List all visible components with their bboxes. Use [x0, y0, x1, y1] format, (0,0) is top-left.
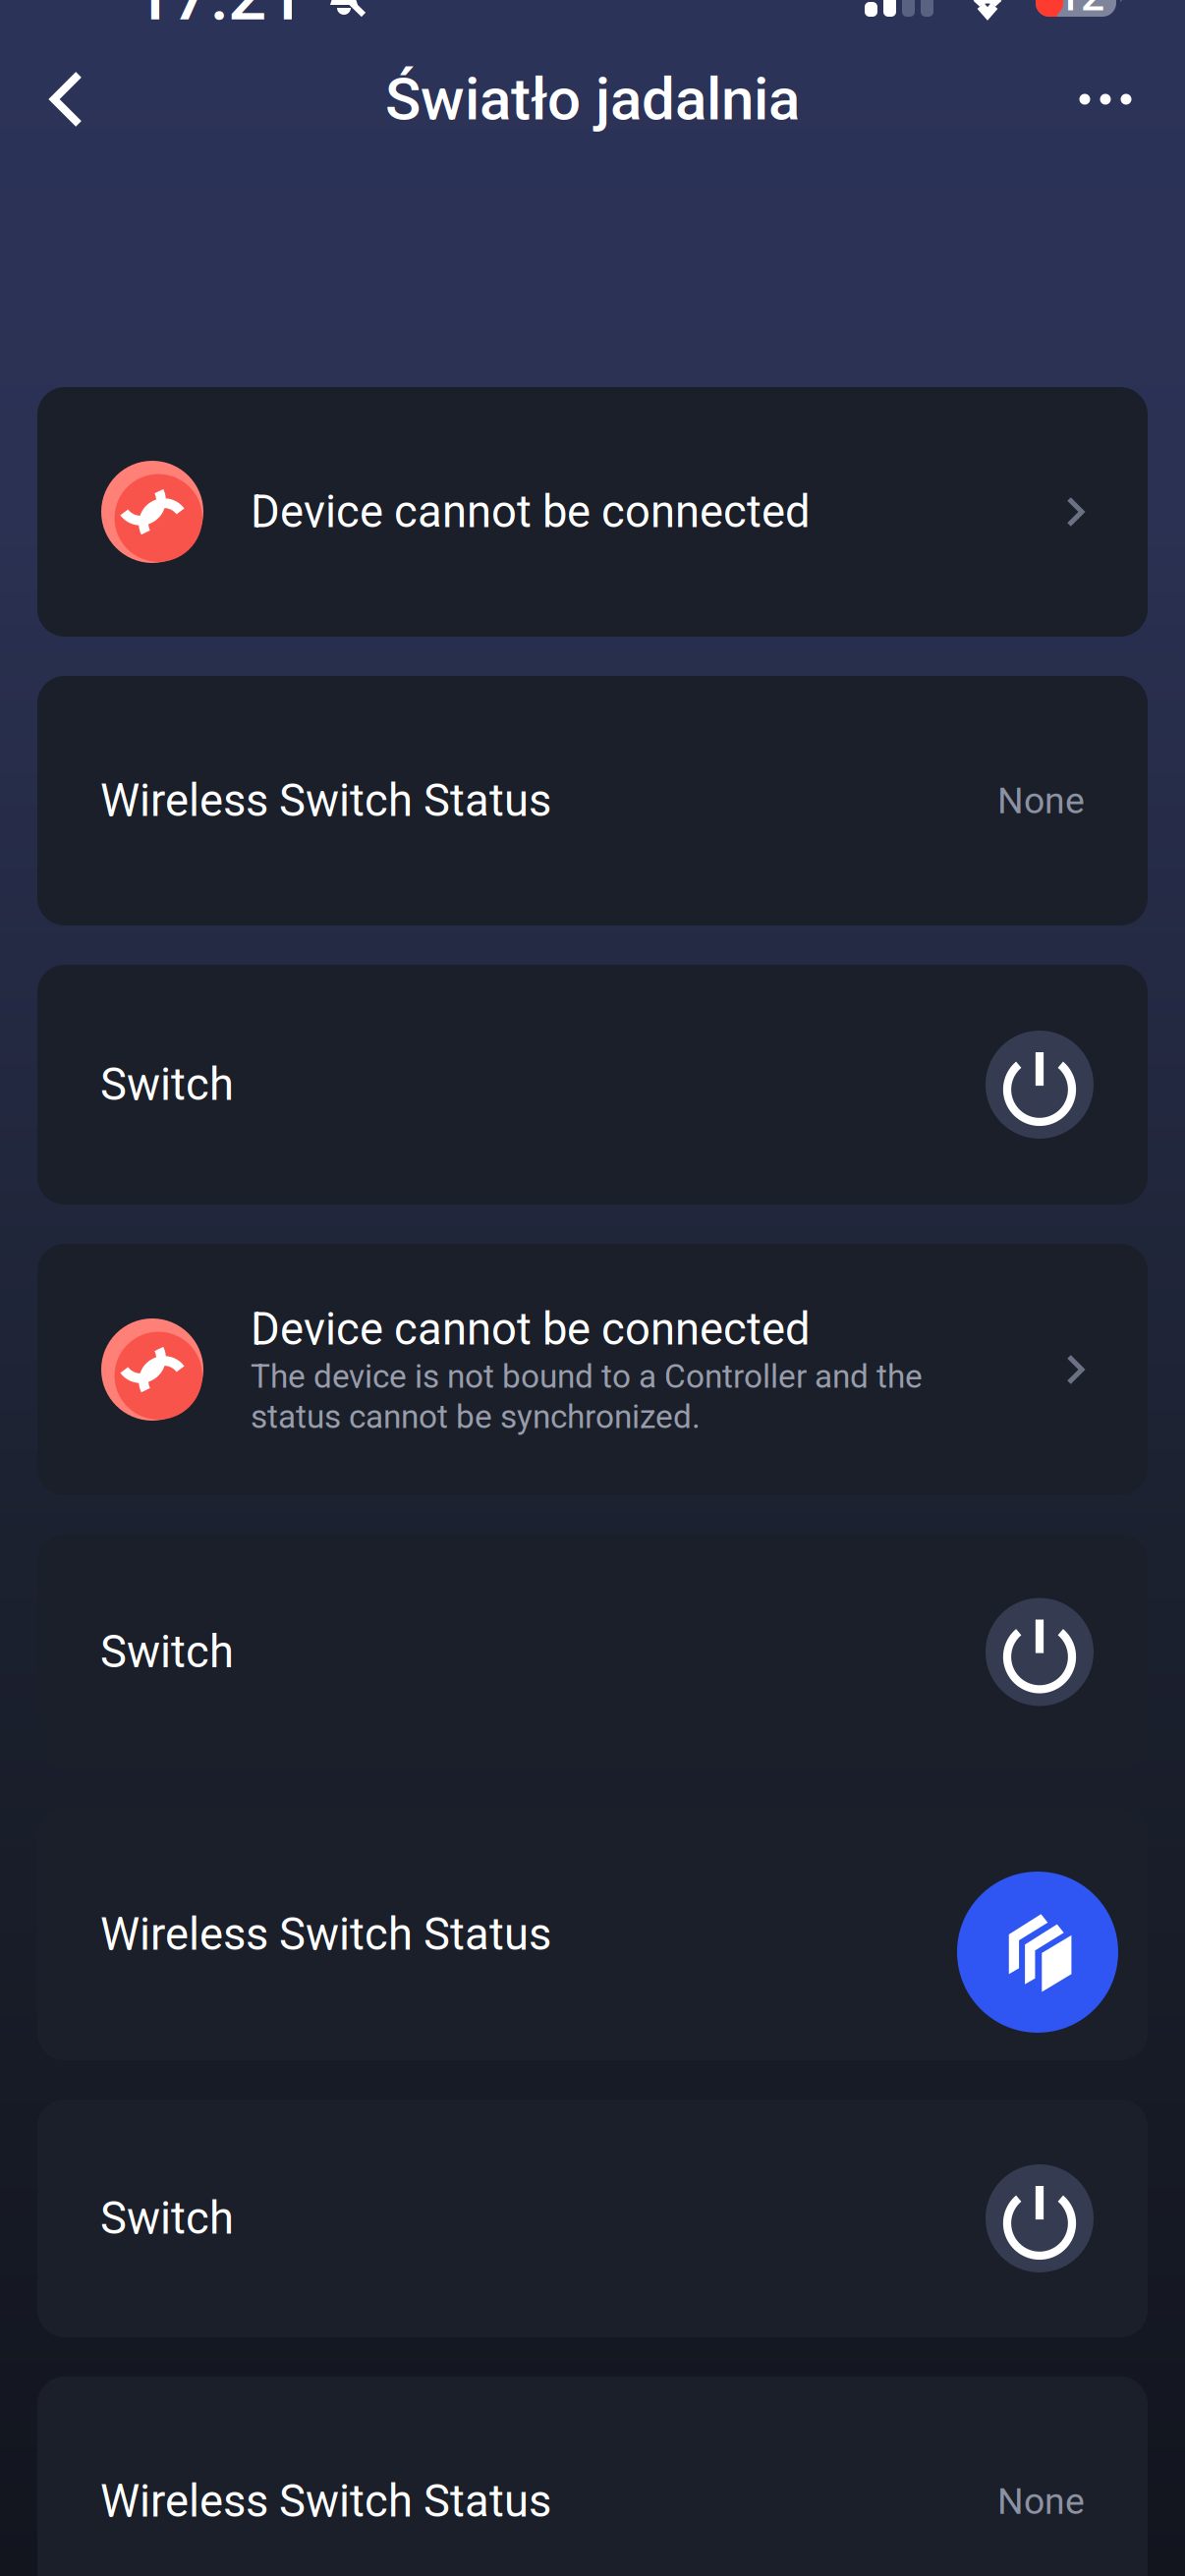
staticText: Światło jadalnia — [385, 65, 800, 134]
staticText: Switch — [100, 1626, 234, 1678]
staticText: None — [997, 2480, 1085, 2523]
button[interactable]: Wireless Switch Status — [37, 2377, 1148, 2576]
staticText: 12 — [1057, 0, 1104, 21]
staticText: Device cannot be connected — [251, 1303, 811, 1355]
button[interactable]: Scenes — [957, 1872, 1118, 2033]
staticText: Wireless Switch Status — [100, 1908, 551, 1960]
staticText: Switch — [100, 2192, 234, 2244]
button[interactable]: Wireless Switch Status — [37, 676, 1148, 925]
staticText: Switch — [100, 1058, 234, 1111]
button[interactable]: More options — [1051, 50, 1159, 148]
staticText: None — [997, 779, 1085, 822]
staticText: Wireless Switch Status — [100, 2475, 551, 2527]
staticText: Device cannot be connected — [251, 486, 811, 538]
button[interactable]: Back — [20, 50, 114, 148]
button[interactable]: Power — [986, 2164, 1094, 2272]
staticText: The device is not bound to a Controller … — [251, 1357, 923, 1396]
button[interactable]: Device cannot be connected — [37, 1244, 1148, 1495]
staticText: 17:21 — [134, 0, 305, 36]
staticText: status cannot be synchronized. — [251, 1398, 701, 1436]
button[interactable]: Power — [986, 1598, 1094, 1706]
button[interactable]: Device cannot be connected — [37, 387, 1148, 637]
button[interactable]: Power — [986, 1031, 1094, 1139]
staticText: Wireless Switch Status — [100, 775, 551, 827]
